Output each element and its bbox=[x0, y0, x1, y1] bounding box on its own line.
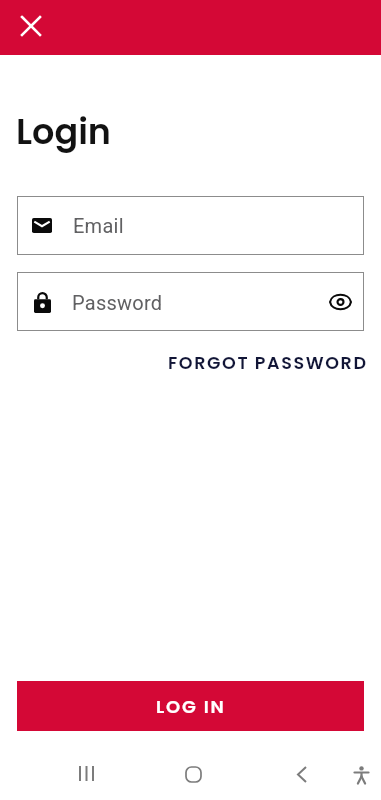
staticText: Password bbox=[72, 291, 163, 314]
staticText: Login bbox=[16, 107, 111, 156]
button[interactable]: Accessibility bbox=[341, 750, 381, 800]
button[interactable]: Home bbox=[169, 749, 217, 799]
button[interactable]: FORGOT PASSWORD bbox=[168, 346, 381, 381]
button[interactable]: Password bbox=[17, 272, 364, 331]
button[interactable]: Show password bbox=[318, 280, 362, 324]
button[interactable]: Back bbox=[278, 749, 326, 799]
staticText: LOG IN bbox=[156, 694, 226, 719]
button[interactable]: LOG IN bbox=[17, 681, 364, 731]
button[interactable]: Close bbox=[11, 6, 51, 46]
staticText: FORGOT PASSWORD bbox=[168, 351, 368, 376]
button[interactable]: Email bbox=[17, 196, 364, 255]
staticText: Email bbox=[73, 214, 124, 237]
button[interactable]: Recents bbox=[62, 748, 110, 798]
